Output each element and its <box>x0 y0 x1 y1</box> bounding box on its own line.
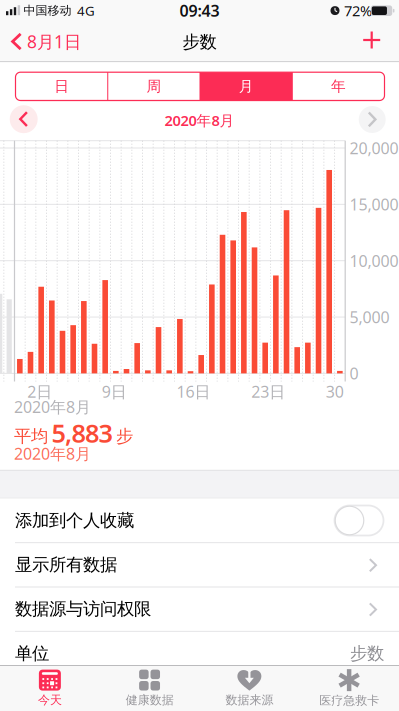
staticText: 今天 <box>38 693 62 707</box>
staticText: 健康数据 <box>126 693 174 707</box>
staticText: 9日 <box>102 381 127 402</box>
staticText: 0 <box>349 363 358 384</box>
button[interactable]: 单位 <box>0 631 399 676</box>
button[interactable]: 数据源与访问权限 <box>0 587 399 631</box>
staticText: 步数 <box>182 31 216 53</box>
staticText: 数据源与访问权限 <box>15 598 151 620</box>
staticText: 09:43 <box>179 0 219 21</box>
staticText: 2020年8月 <box>14 443 91 464</box>
staticText: 日 <box>54 77 69 95</box>
button[interactable]: 添加到个人收藏 <box>0 498 399 543</box>
button[interactable]: 下个月 <box>359 106 386 133</box>
staticText: 显示所有数据 <box>15 554 117 575</box>
button[interactable]: 上个月 <box>10 105 38 133</box>
staticText: 72% <box>344 1 372 20</box>
staticText: 月 <box>239 77 254 95</box>
button[interactable]: 添加数据 <box>357 25 386 54</box>
staticText: 5,883 <box>51 416 112 450</box>
staticText: 5,000 <box>349 306 389 328</box>
button[interactable]: 显示所有数据 <box>0 543 399 587</box>
staticText: 2日 <box>27 381 52 402</box>
button[interactable]: 月 <box>200 72 292 100</box>
button[interactable]: 日 <box>15 72 108 100</box>
staticText: 平均 <box>14 425 48 447</box>
staticText: 23日 <box>251 381 285 402</box>
staticText: 4G <box>77 2 95 19</box>
button[interactable]: 今天 <box>0 666 100 711</box>
button[interactable]: 周 <box>108 72 200 100</box>
staticText: 16日 <box>176 381 210 402</box>
staticText: 2020年8月 <box>164 110 234 130</box>
staticText: 周 <box>146 77 161 95</box>
button[interactable]: 数据来源 <box>199 666 299 711</box>
staticText: 单位 <box>15 643 49 664</box>
button[interactable]: 健康数据 <box>100 666 200 711</box>
staticText: 8月1日 <box>27 30 81 53</box>
staticText: 数据来源 <box>225 693 273 707</box>
staticText: 10,000 <box>349 250 398 271</box>
button[interactable]: 年 <box>292 72 384 100</box>
staticText: 中国移动 <box>23 3 71 18</box>
staticText: 30 <box>326 381 344 402</box>
staticText: 2020年8月 <box>14 396 91 417</box>
staticText: 医疗急救卡 <box>319 693 379 708</box>
staticText: 年 <box>331 77 346 95</box>
staticText: 添加到个人收藏 <box>15 510 134 531</box>
staticText: 步数 <box>350 643 384 664</box>
staticText: 20,000 <box>349 137 398 159</box>
button[interactable]: 医疗急救卡 <box>299 666 399 711</box>
staticText: 步 <box>116 425 133 447</box>
staticText: 15,000 <box>349 194 398 215</box>
button[interactable]: 8月1日 <box>11 26 141 56</box>
